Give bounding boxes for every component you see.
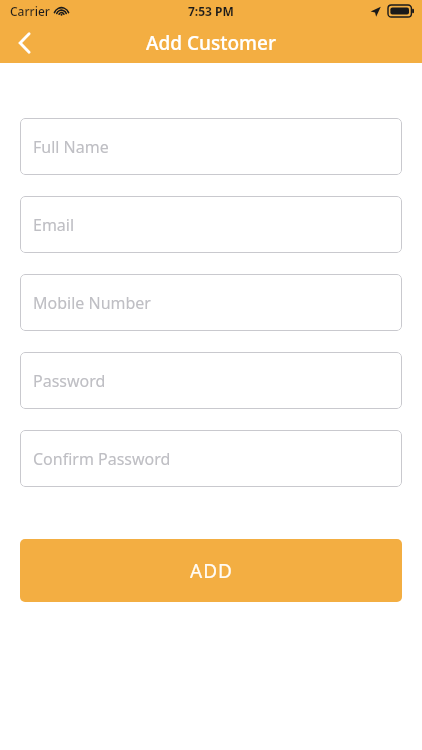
button[interactable]: Back	[0, 22, 48, 63]
staticText: Email	[33, 214, 75, 236]
staticText: Add Customer	[146, 30, 276, 56]
staticText: Carrier	[10, 3, 50, 19]
button[interactable]: Email	[20, 196, 402, 253]
button[interactable]: Password	[20, 352, 402, 409]
button[interactable]: Mobile Number	[20, 274, 402, 331]
button[interactable]: Full Name	[20, 118, 402, 175]
button[interactable]: Confirm Password	[20, 430, 402, 487]
staticText: Mobile Number	[33, 292, 151, 314]
staticText: 7:53 PM	[188, 3, 234, 19]
staticText: Password	[33, 370, 106, 392]
button[interactable]: ADD	[20, 539, 402, 602]
staticText: ADD	[190, 558, 233, 584]
staticText: Full Name	[33, 136, 109, 158]
staticText: Confirm Password	[33, 448, 171, 470]
